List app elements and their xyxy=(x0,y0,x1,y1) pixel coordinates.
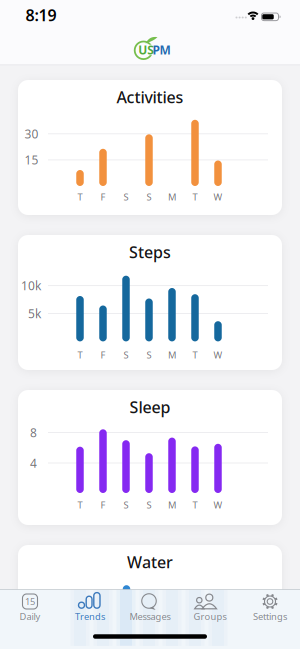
staticText: 15 xyxy=(24,152,38,168)
staticText: M xyxy=(168,499,176,511)
staticText: W xyxy=(213,191,222,203)
staticText: S xyxy=(123,499,128,511)
staticText: T xyxy=(77,499,82,511)
staticText: S xyxy=(146,349,151,361)
staticText: Daily xyxy=(19,610,40,623)
staticText: Trends xyxy=(75,610,105,623)
staticText: 10k xyxy=(21,278,41,293)
staticText: S xyxy=(123,349,128,361)
staticText: 30 xyxy=(24,126,38,142)
staticText: T xyxy=(192,191,197,203)
staticText: M xyxy=(168,191,176,203)
staticText: 15 xyxy=(25,595,35,608)
staticText: PM xyxy=(152,42,170,58)
staticText: US xyxy=(138,42,154,58)
staticText: S xyxy=(146,191,151,203)
staticText: 4 xyxy=(30,455,37,471)
staticText: 8:19 xyxy=(25,4,56,26)
staticText: Settings xyxy=(253,610,287,623)
staticText: S xyxy=(123,191,128,203)
staticText: F xyxy=(100,499,105,511)
staticText: Activities xyxy=(116,86,183,108)
staticText: Sleep xyxy=(129,396,170,418)
staticText: F xyxy=(100,349,105,361)
staticText: Water xyxy=(127,551,173,573)
staticText: W xyxy=(213,499,222,511)
staticText: F xyxy=(100,191,105,203)
staticText: T xyxy=(77,191,82,203)
staticText: S xyxy=(146,499,151,511)
staticText: Messages xyxy=(129,610,170,623)
staticText: 8 xyxy=(30,424,37,440)
staticText: 5k xyxy=(28,305,41,321)
staticText: W xyxy=(213,349,222,361)
staticText: Groups xyxy=(193,610,226,623)
staticText: T xyxy=(192,349,197,361)
staticText: Steps xyxy=(129,241,171,263)
staticText: T xyxy=(192,499,197,511)
staticText: M xyxy=(168,349,176,361)
staticText: T xyxy=(77,349,82,361)
